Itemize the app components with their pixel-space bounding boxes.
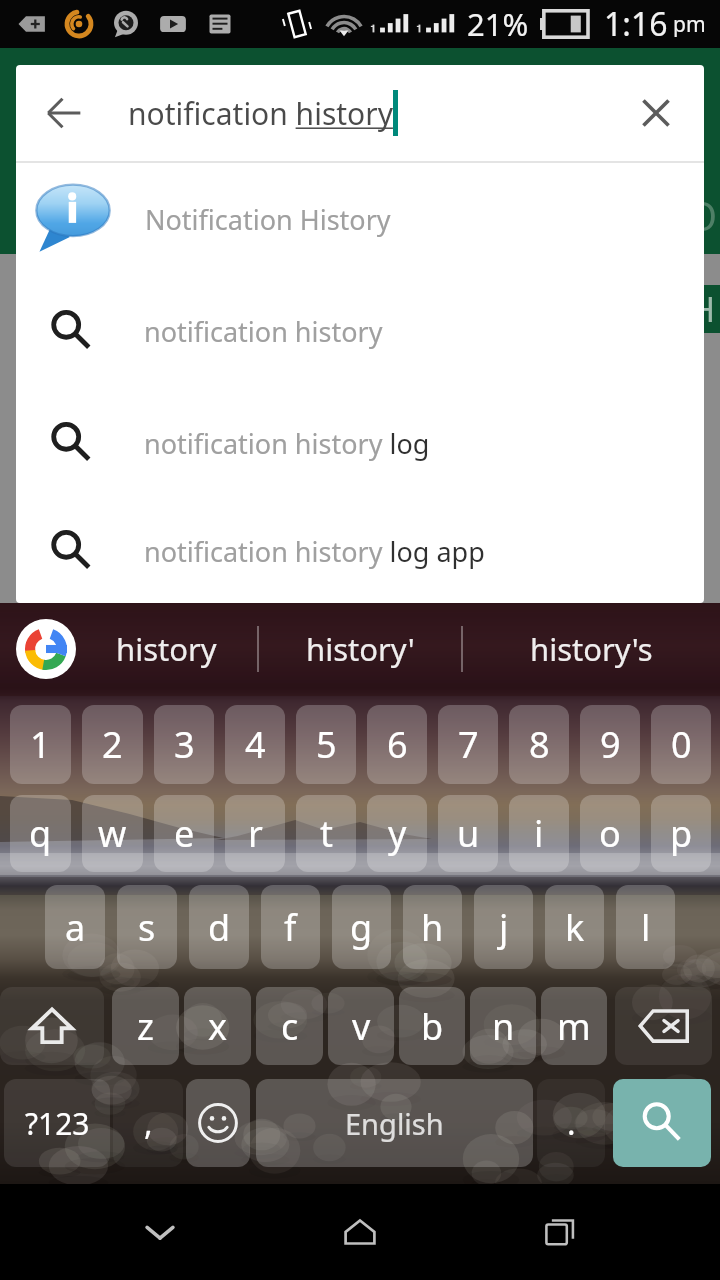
button[interactable]: x — [184, 987, 251, 1065]
staticText: q — [29, 809, 52, 858]
staticText: p — [670, 809, 693, 858]
button[interactable]: Clear search — [608, 65, 704, 161]
button[interactable]: 3 — [154, 705, 214, 784]
button[interactable]: 1 — [10, 705, 71, 784]
button[interactable]: b — [399, 987, 465, 1065]
staticText: w — [98, 809, 127, 858]
button[interactable]: t — [296, 795, 356, 872]
button[interactable]: Notification History — [16, 163, 704, 275]
staticText: g — [350, 903, 373, 952]
button[interactable]: q — [10, 795, 71, 872]
button[interactable]: 8 — [509, 705, 569, 784]
staticText: 6 — [387, 720, 408, 769]
button[interactable]: 4 — [225, 705, 285, 784]
button[interactable]: d — [189, 885, 249, 969]
button[interactable]: p — [651, 795, 711, 872]
button[interactable]: u — [438, 795, 498, 872]
staticText: h — [421, 903, 444, 952]
staticText: notification history log app — [144, 533, 485, 570]
staticText: r — [248, 809, 263, 858]
staticText: history' — [306, 628, 415, 670]
staticText: e — [174, 809, 195, 858]
button[interactable]: history's — [463, 603, 720, 695]
staticText: f — [284, 903, 297, 952]
staticText: j — [499, 903, 509, 952]
button[interactable]: Backspace — [615, 987, 712, 1065]
button[interactable]: k — [545, 885, 604, 969]
staticText: notification history — [128, 93, 393, 134]
button[interactable]: history' — [259, 603, 461, 695]
staticText: m — [557, 1002, 591, 1051]
staticText: x — [208, 1002, 228, 1051]
button[interactable]: j — [474, 885, 533, 969]
staticText: c — [281, 1002, 299, 1051]
button[interactable]: w — [82, 795, 143, 872]
staticText: history's — [530, 628, 653, 670]
button[interactable]: Shift — [0, 987, 104, 1065]
button[interactable]: Recent apps — [460, 1184, 660, 1280]
staticText: z — [137, 1002, 154, 1051]
button[interactable]: h — [403, 885, 462, 969]
staticText: English — [345, 1104, 444, 1143]
button[interactable]: z — [112, 987, 179, 1065]
staticText: 4 — [245, 720, 266, 769]
button[interactable]: ?123 — [4, 1079, 110, 1167]
button[interactable]: o — [580, 795, 640, 872]
staticText: t — [320, 809, 333, 858]
staticText: notification history log — [144, 425, 430, 462]
staticText: O — [686, 188, 718, 242]
button[interactable]: Search — [613, 1079, 711, 1167]
button[interactable]: notification history log app — [16, 499, 704, 603]
button[interactable]: 2 — [82, 705, 143, 784]
button[interactable]: r — [225, 795, 285, 872]
button[interactable]: Emoji — [186, 1079, 250, 1167]
button[interactable]: 6 — [367, 705, 427, 784]
staticText: notification history — [144, 313, 383, 350]
button[interactable]: 0 — [651, 705, 711, 784]
button[interactable]: Home — [260, 1184, 460, 1280]
button[interactable]: English — [256, 1079, 533, 1167]
button[interactable]: 9 — [580, 705, 640, 784]
staticText: i — [534, 809, 544, 858]
staticText: 7 — [458, 720, 479, 769]
button[interactable]: . — [537, 1079, 605, 1167]
button[interactable]: Hide keyboard — [60, 1184, 260, 1280]
button[interactable]: v — [328, 987, 394, 1065]
staticText: 1 — [30, 720, 51, 769]
staticText: l — [641, 903, 651, 952]
staticText: o — [599, 809, 621, 858]
staticText: pm — [673, 10, 706, 39]
staticText: 1:16 — [604, 2, 668, 46]
button[interactable]: e — [154, 795, 214, 872]
button[interactable]: f — [261, 885, 320, 969]
button[interactable]: Google search — [16, 619, 76, 679]
staticText: y — [388, 809, 407, 858]
button[interactable]: l — [616, 885, 675, 969]
staticText: n — [492, 1002, 515, 1051]
button[interactable]: c — [256, 987, 323, 1065]
button[interactable]: 5 — [296, 705, 356, 784]
button[interactable]: m — [541, 987, 607, 1065]
button[interactable]: y — [367, 795, 427, 872]
button[interactable]: n — [470, 987, 536, 1065]
staticText: b — [421, 1002, 444, 1051]
button[interactable]: 7 — [438, 705, 498, 784]
button[interactable]: , — [113, 1079, 183, 1167]
staticText: 2 — [102, 720, 123, 769]
staticText: 3 — [174, 720, 195, 769]
button[interactable]: history — [76, 603, 257, 695]
button[interactable]: g — [332, 885, 391, 969]
staticText: u — [457, 809, 480, 858]
button[interactable]: notification history — [16, 275, 704, 387]
button[interactable]: Back — [16, 65, 112, 161]
staticText: a — [65, 903, 86, 952]
staticText: 0 — [671, 720, 692, 769]
button[interactable]: a — [45, 885, 105, 969]
button[interactable]: i — [509, 795, 569, 872]
staticText: ?123 — [25, 1103, 90, 1144]
button[interactable]: notification history log — [16, 387, 704, 499]
button[interactable]: s — [117, 885, 177, 969]
staticText: v — [352, 1002, 371, 1051]
staticText: history — [116, 628, 217, 670]
staticText: , — [144, 1101, 153, 1145]
